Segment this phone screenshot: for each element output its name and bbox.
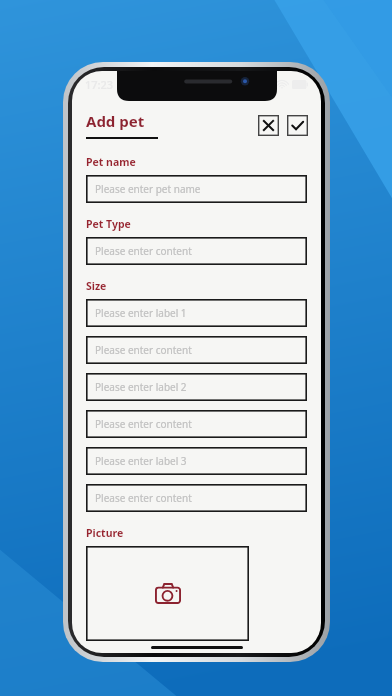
button[interactable]: Please enter content [86, 410, 307, 438]
button[interactable]: Please enter pet name [86, 175, 307, 203]
button[interactable]: Please enter content [86, 336, 307, 364]
staticText: 17:23 [85, 77, 114, 92]
staticText: Picture [86, 526, 124, 540]
staticText: Size [86, 279, 107, 293]
button[interactable]: Please enter content [86, 484, 307, 512]
staticText: Please enter label 3 [95, 454, 187, 468]
staticText: Please enter content [95, 244, 192, 258]
button[interactable]: Cancel [258, 115, 279, 136]
staticText: Please enter label 2 [95, 380, 187, 394]
button[interactable]: Please enter label 3 [86, 447, 307, 475]
button[interactable]: Please enter label 2 [86, 373, 307, 401]
staticText: Pet Type [86, 217, 131, 231]
button[interactable]: Add picture [86, 546, 249, 641]
staticText: Pet name [86, 155, 136, 169]
button[interactable]: Please enter label 1 [86, 299, 307, 327]
staticText: Please enter content [95, 491, 192, 505]
staticText: Please enter label 1 [95, 306, 187, 320]
button[interactable]: Save [287, 115, 308, 136]
button[interactable]: Please enter content [86, 237, 307, 265]
staticText: Please enter content [95, 343, 192, 357]
staticText: Please enter pet name [95, 182, 201, 196]
staticText: Please enter content [95, 417, 192, 431]
staticText: Add pet [86, 111, 145, 131]
